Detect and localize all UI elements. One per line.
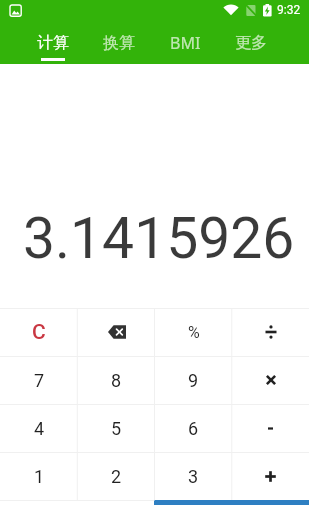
button[interactable] [232, 404, 309, 452]
button[interactable]: 更多 [218, 26, 284, 60]
button[interactable]: 4 [0, 404, 78, 452]
staticText: 9:32 [277, 3, 301, 17]
button[interactable] [232, 452, 309, 500]
button[interactable]: 换算 [86, 26, 152, 60]
staticText: BMI [170, 32, 201, 54]
button[interactable]: 3 [155, 452, 232, 500]
staticText: 换算 [103, 33, 135, 53]
staticText: 更多 [235, 33, 267, 53]
button[interactable]: 9 [155, 356, 232, 404]
button[interactable]: C [0, 308, 78, 356]
button[interactable] [232, 308, 309, 356]
button[interactable]: 7 [0, 356, 78, 404]
staticText: 1 [34, 466, 45, 487]
staticText: C [32, 320, 46, 345]
staticText: % [188, 323, 200, 342]
staticText: 5 [111, 418, 122, 439]
button[interactable]: 2 [78, 452, 155, 500]
staticText: 8 [111, 370, 122, 391]
button[interactable] [154, 500, 309, 505]
button[interactable]: 5 [78, 404, 155, 452]
button[interactable]: 6 [155, 404, 232, 452]
staticText: 3 [188, 466, 199, 487]
staticText: 7 [34, 370, 45, 391]
staticText: 9 [188, 370, 199, 391]
button[interactable]: 计算 [20, 26, 86, 60]
button[interactable]: 8 [78, 356, 155, 404]
button[interactable] [232, 356, 309, 404]
button[interactable] [78, 308, 155, 356]
staticText: 3.1415926 [23, 205, 295, 272]
button[interactable]: 1 [0, 452, 78, 500]
staticText: 6 [188, 418, 199, 439]
button[interactable]: BMI [152, 26, 218, 60]
staticText: 2 [111, 466, 122, 487]
staticText: 4 [34, 418, 45, 439]
button[interactable]: % [155, 308, 232, 356]
staticText: 计算 [37, 33, 69, 53]
